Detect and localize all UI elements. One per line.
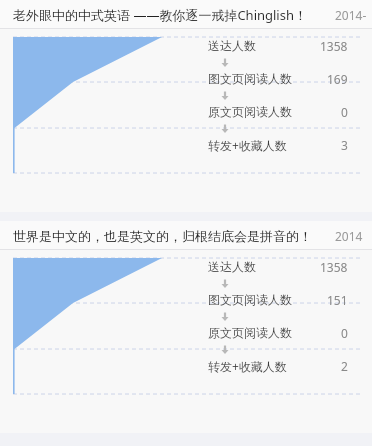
staticText: 2 xyxy=(341,358,348,374)
button[interactable]: 老外眼中的中式英语 ——教你逐一戒掉Chinglish！ xyxy=(0,0,372,212)
staticText: 原文页阅读人数 xyxy=(208,325,292,340)
staticText: 原文页阅读人数 xyxy=(208,104,292,119)
staticText: 169 xyxy=(327,71,348,87)
button[interactable]: 世界是中文的，也是英文的，归根结底会是拼音的！ xyxy=(0,221,372,433)
staticText: 图文页阅读人数 xyxy=(208,292,292,307)
staticText: 151 xyxy=(327,292,348,308)
staticText: 0 xyxy=(341,325,348,341)
staticText: 图文页阅读人数 xyxy=(208,71,292,86)
staticText: 1358 xyxy=(320,38,348,54)
staticText: 2014 xyxy=(335,228,363,244)
staticText: 2014- xyxy=(335,7,367,23)
staticText: 0 xyxy=(341,104,348,120)
staticText: 送达人数 xyxy=(208,259,256,274)
staticText: 1358 xyxy=(320,259,348,275)
staticText: 转发+收藏人数 xyxy=(208,358,287,374)
staticText: 送达人数 xyxy=(208,38,256,53)
staticText: 老外眼中的中式英语 ——教你逐一戒掉Chinglish！ xyxy=(13,6,307,24)
staticText: 3 xyxy=(341,137,348,153)
staticText: 世界是中文的，也是英文的，归根结底会是拼音的！ xyxy=(13,228,312,244)
staticText: 转发+收藏人数 xyxy=(208,137,287,153)
